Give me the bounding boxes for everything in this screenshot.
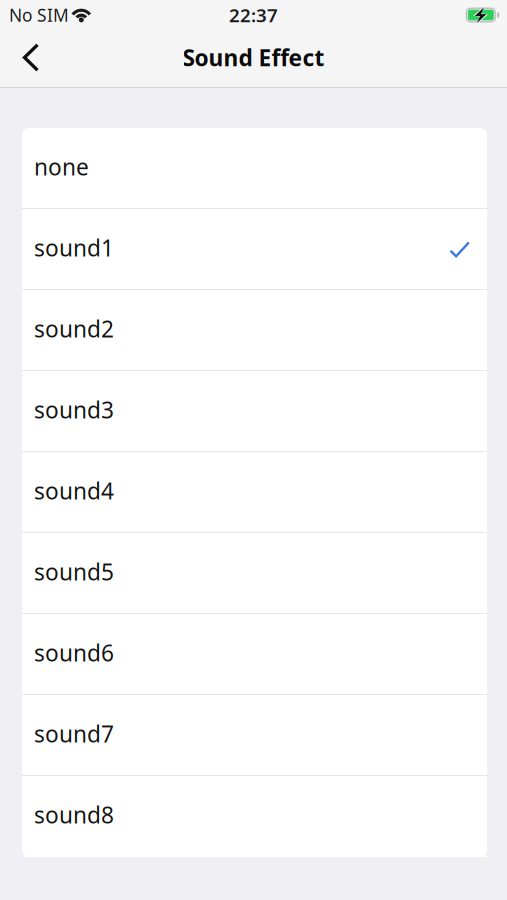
button[interactable]: sound8 [22,776,487,857]
button[interactable]: none [22,128,487,209]
staticText: sound8 [34,800,114,830]
staticText: none [34,152,89,182]
button[interactable]: sound4 [22,452,487,533]
staticText: sound4 [34,476,114,506]
staticText: sound6 [34,638,114,668]
staticText: 22:37 [229,3,278,27]
staticText: No SIM [9,3,69,26]
staticText: Sound Effect [182,42,324,72]
button[interactable]: Back [0,33,56,85]
button[interactable]: sound6 [22,614,487,695]
button[interactable]: sound3 [22,371,487,452]
staticText: sound2 [34,314,114,344]
button[interactable]: sound2 [22,290,487,371]
staticText: sound5 [34,557,114,587]
staticText: sound7 [34,719,114,749]
button[interactable]: sound1 [22,209,487,290]
staticText: sound3 [34,395,114,425]
button[interactable]: sound5 [22,533,487,614]
button[interactable]: sound7 [22,695,487,776]
staticText: sound1 [34,233,114,263]
